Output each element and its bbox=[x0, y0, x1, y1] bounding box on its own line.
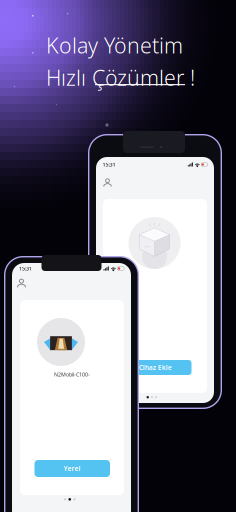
staticText: 15:31 bbox=[19, 265, 32, 272]
button[interactable]: Profil bbox=[101, 176, 114, 189]
staticText: Yerel bbox=[64, 464, 81, 473]
staticText: 15:31 bbox=[102, 161, 115, 168]
staticText: N2Mobil-C100- bbox=[54, 371, 90, 378]
button[interactable]: Cihaz Ekle bbox=[119, 360, 191, 375]
staticText: Hızlı Çözümler ! bbox=[46, 63, 195, 92]
staticText: Cihaz Ekle bbox=[139, 363, 172, 372]
button[interactable]: Yerel bbox=[34, 460, 110, 477]
staticText: Kolay Yönetim bbox=[46, 31, 183, 59]
button[interactable]: Profil bbox=[14, 276, 28, 290]
